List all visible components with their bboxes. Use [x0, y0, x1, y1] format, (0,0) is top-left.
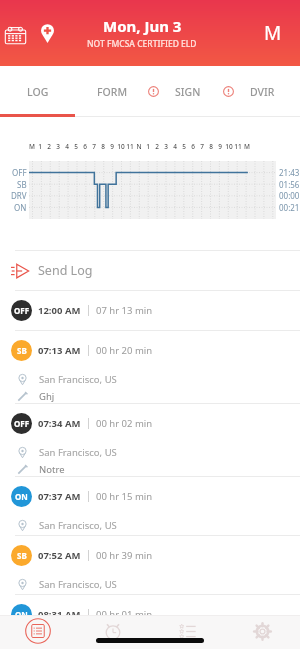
staticText: FORM — [97, 85, 128, 99]
staticText: 2 — [155, 142, 159, 151]
staticText: 11 — [126, 142, 134, 151]
staticText: SB — [17, 179, 27, 190]
staticText: 10 — [117, 142, 125, 151]
staticText: 3 — [56, 142, 60, 151]
button[interactable]: Settings — [225, 615, 300, 647]
button[interactable]: M — [258, 18, 288, 48]
staticText: 07:34 AM — [38, 417, 81, 430]
staticText: Ghj — [39, 390, 55, 403]
button[interactable]: DVIR — [225, 66, 300, 117]
staticText: Mon, Jun 3 — [103, 16, 182, 36]
staticText: NOT FMCSA CERTIFIED ELD — [87, 38, 197, 50]
staticText: 6 — [191, 142, 195, 151]
staticText: 7 — [200, 142, 204, 151]
staticText: 4 — [173, 142, 177, 151]
staticText: Send Log — [38, 262, 93, 279]
staticText: DRV — [11, 190, 27, 201]
staticText: 00 hr 01 min — [96, 608, 153, 621]
staticText: 1 — [38, 142, 42, 151]
staticText: 07:13 AM — [38, 344, 81, 357]
staticText: ON — [14, 202, 27, 213]
staticText: 3 — [164, 142, 168, 151]
staticText: 11 — [234, 142, 242, 151]
button[interactable]: Calendar — [1, 19, 29, 47]
staticText: SB — [17, 550, 27, 561]
staticText: 4 — [65, 142, 69, 151]
button[interactable]: SIGN — [150, 66, 225, 117]
staticText: 00 hr 39 min — [96, 549, 153, 562]
staticText: 00:21 — [279, 202, 300, 213]
staticText: 9 — [110, 142, 114, 151]
staticText: N — [136, 142, 142, 151]
staticText: 10 — [225, 142, 233, 151]
staticText: 7 — [92, 142, 96, 151]
staticText: 8 — [209, 142, 213, 151]
staticText: 21:43 — [279, 167, 300, 178]
staticText: 9 — [218, 142, 222, 151]
button[interactable]: Add location — [33, 19, 61, 47]
button[interactable]: SB — [0, 536, 300, 594]
staticText: M — [264, 20, 282, 46]
staticText: DVIR — [250, 85, 275, 99]
staticText: 07:52 AM — [38, 549, 81, 562]
button[interactable]: Inspections — [150, 615, 225, 647]
staticText: Notre — [39, 463, 65, 476]
button[interactable]: OFF — [0, 404, 300, 476]
button[interactable]: FORM — [75, 66, 150, 117]
staticText: 07:37 AM — [38, 490, 81, 503]
button[interactable]: Send Log — [0, 251, 300, 290]
button[interactable]: ON — [0, 595, 300, 634]
staticText: ON — [15, 609, 28, 620]
staticText: OFF — [14, 418, 30, 429]
button[interactable]: Logs — [0, 615, 75, 647]
staticText: 5 — [182, 142, 186, 151]
staticText: San Francisco, US — [39, 373, 117, 386]
button[interactable]: SB — [0, 331, 300, 403]
staticText: OFF — [14, 305, 30, 316]
staticText: San Francisco, US — [39, 519, 117, 532]
staticText: 00 hr 15 min — [96, 490, 153, 503]
button[interactable]: Clock — [75, 615, 150, 647]
staticText: San Francisco, US — [39, 578, 117, 591]
staticText: ON — [15, 491, 28, 502]
staticText: 1 — [146, 142, 150, 151]
staticText: M — [29, 142, 35, 151]
staticText: 6 — [83, 142, 87, 151]
staticText: 00:00 — [279, 190, 300, 201]
staticText: SB — [17, 345, 27, 356]
staticText: OFF — [12, 167, 27, 178]
staticText: 07 hr 13 min — [96, 304, 153, 317]
staticText: SIGN — [175, 85, 201, 99]
staticText: 2 — [47, 142, 51, 151]
staticText: San Francisco, US — [39, 446, 117, 459]
staticText: 00 hr 02 min — [96, 417, 153, 430]
staticText: M — [244, 142, 250, 151]
staticText: 01:56 — [279, 179, 300, 190]
button[interactable]: ON — [0, 477, 300, 535]
staticText: 12:00 AM — [38, 304, 81, 317]
button[interactable]: LOG — [0, 66, 75, 117]
staticText: 5 — [74, 142, 78, 151]
staticText: 8 — [101, 142, 105, 151]
button[interactable]: OFF — [0, 291, 300, 330]
staticText: LOG — [27, 85, 49, 99]
staticText: 08:31 AM — [38, 608, 81, 621]
staticText: 00 hr 20 min — [96, 344, 153, 357]
